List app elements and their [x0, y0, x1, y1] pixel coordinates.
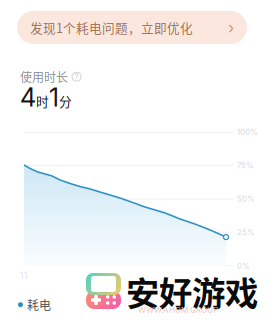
button[interactable]: 发现1个耗电问题，立即优化 [17, 11, 247, 44]
staticText: ? [74, 72, 78, 81]
staticText: › [228, 18, 234, 37]
staticText: 11 [20, 270, 28, 280]
staticText: 安好游戏 [126, 267, 258, 315]
staticText: 25% [237, 227, 255, 237]
staticText: 4 [20, 82, 36, 113]
staticText: 分 [59, 92, 72, 110]
staticText: 时 [36, 92, 49, 110]
staticText: 100% [237, 127, 258, 137]
staticText: 1 [49, 82, 59, 113]
staticText: 0% [237, 261, 250, 271]
staticText: 使用时长 [20, 68, 68, 85]
staticText: 耗电 [27, 296, 51, 313]
staticText: WWW.AHGM.GROUP [138, 305, 218, 315]
staticText: 发现1个耗电问题，立即优化 [30, 18, 193, 37]
staticText: 75% [237, 160, 254, 170]
staticText: 50% [237, 194, 255, 204]
